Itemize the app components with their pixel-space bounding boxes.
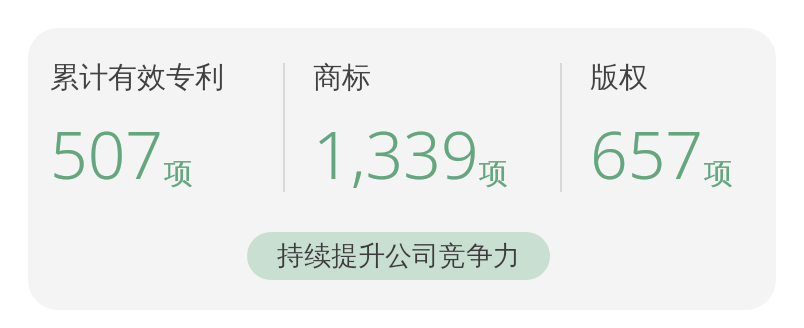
staticText: 版权 (590, 59, 648, 96)
staticText: 累计有效专利 (50, 59, 224, 96)
button[interactable]: 累计有效专利 (28, 59, 283, 198)
button[interactable]: 商标 (285, 59, 560, 198)
staticText: 持续提升公司竞争力 (277, 239, 520, 273)
staticText: 项 (479, 155, 508, 192)
button[interactable]: 版权 (562, 59, 742, 198)
button[interactable]: 持续提升公司竞争力 (247, 232, 550, 280)
staticText: 项 (164, 155, 193, 192)
staticText: 507 (50, 108, 164, 198)
staticText: 项 (704, 155, 733, 192)
staticText: 1,339 (313, 108, 479, 198)
staticText: 657 (590, 108, 704, 198)
staticText: 商标 (313, 59, 371, 96)
